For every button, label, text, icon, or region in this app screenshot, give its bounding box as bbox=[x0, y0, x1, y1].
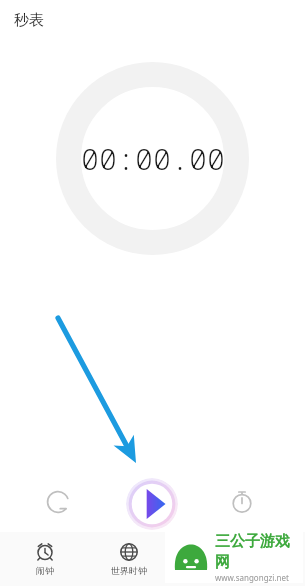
button[interactable]: Lap bbox=[222, 482, 262, 522]
staticText: www.sangongzi.net bbox=[215, 572, 289, 583]
staticText: 三公子游戏网 bbox=[215, 532, 303, 572]
button[interactable]: Reset bbox=[38, 482, 78, 522]
staticText: 00:00.00 bbox=[81, 138, 225, 179]
staticText: 秒表 bbox=[14, 11, 44, 30]
button[interactable]: 世界时钟 bbox=[102, 538, 156, 580]
staticText: 闹钟 bbox=[36, 565, 54, 576]
staticText: 世界时钟 bbox=[111, 565, 147, 576]
button[interactable]: Start bbox=[126, 478, 178, 530]
button[interactable]: 闹钟 bbox=[18, 538, 72, 580]
